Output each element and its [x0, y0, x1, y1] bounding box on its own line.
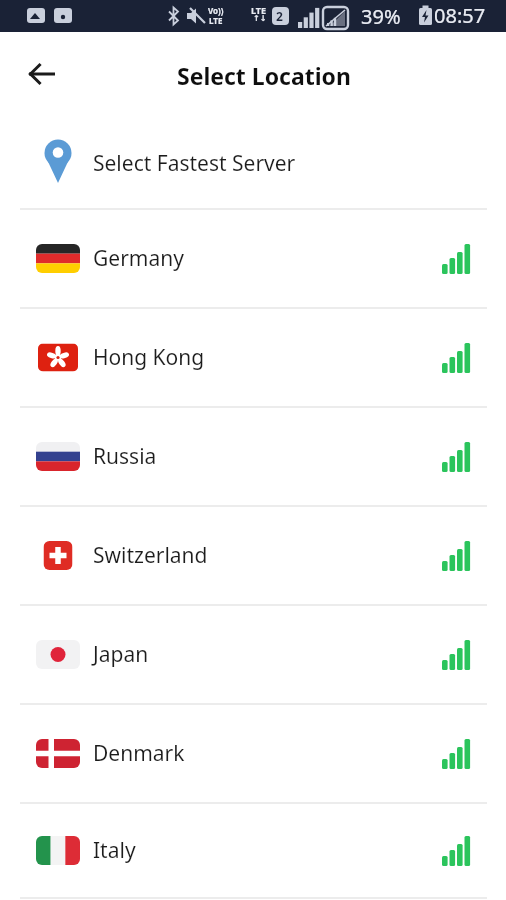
staticText: Japan [93, 640, 149, 669]
staticText: Italy [93, 836, 136, 865]
button[interactable]: Germany [0, 210, 506, 307]
button[interactable]: Hong Kong [0, 309, 506, 406]
staticText: Hong Kong [93, 343, 205, 372]
button[interactable]: Italy [0, 804, 506, 897]
staticText: 39% [361, 3, 401, 30]
staticText: 08:57 [434, 2, 486, 29]
staticText: LTE [209, 15, 223, 26]
staticText: Switzerland [93, 541, 208, 570]
button[interactable]: Russia [0, 408, 506, 505]
staticText: ↑↓ [253, 14, 267, 23]
staticText: Russia [93, 442, 157, 471]
staticText: Select Fastest Server [93, 149, 296, 178]
button[interactable]: Denmark [0, 705, 506, 802]
staticText: Denmark [93, 739, 185, 768]
staticText: 2 [276, 8, 283, 24]
button[interactable]: Select Fastest Server [0, 118, 506, 208]
button[interactable] [18, 51, 66, 99]
button[interactable]: Switzerland [0, 507, 506, 604]
staticText: Vo)) [208, 5, 224, 16]
staticText: Select Location [177, 60, 351, 91]
staticText: Germany [93, 244, 184, 273]
button[interactable]: Japan [0, 606, 506, 703]
staticText: LTE [251, 4, 267, 16]
